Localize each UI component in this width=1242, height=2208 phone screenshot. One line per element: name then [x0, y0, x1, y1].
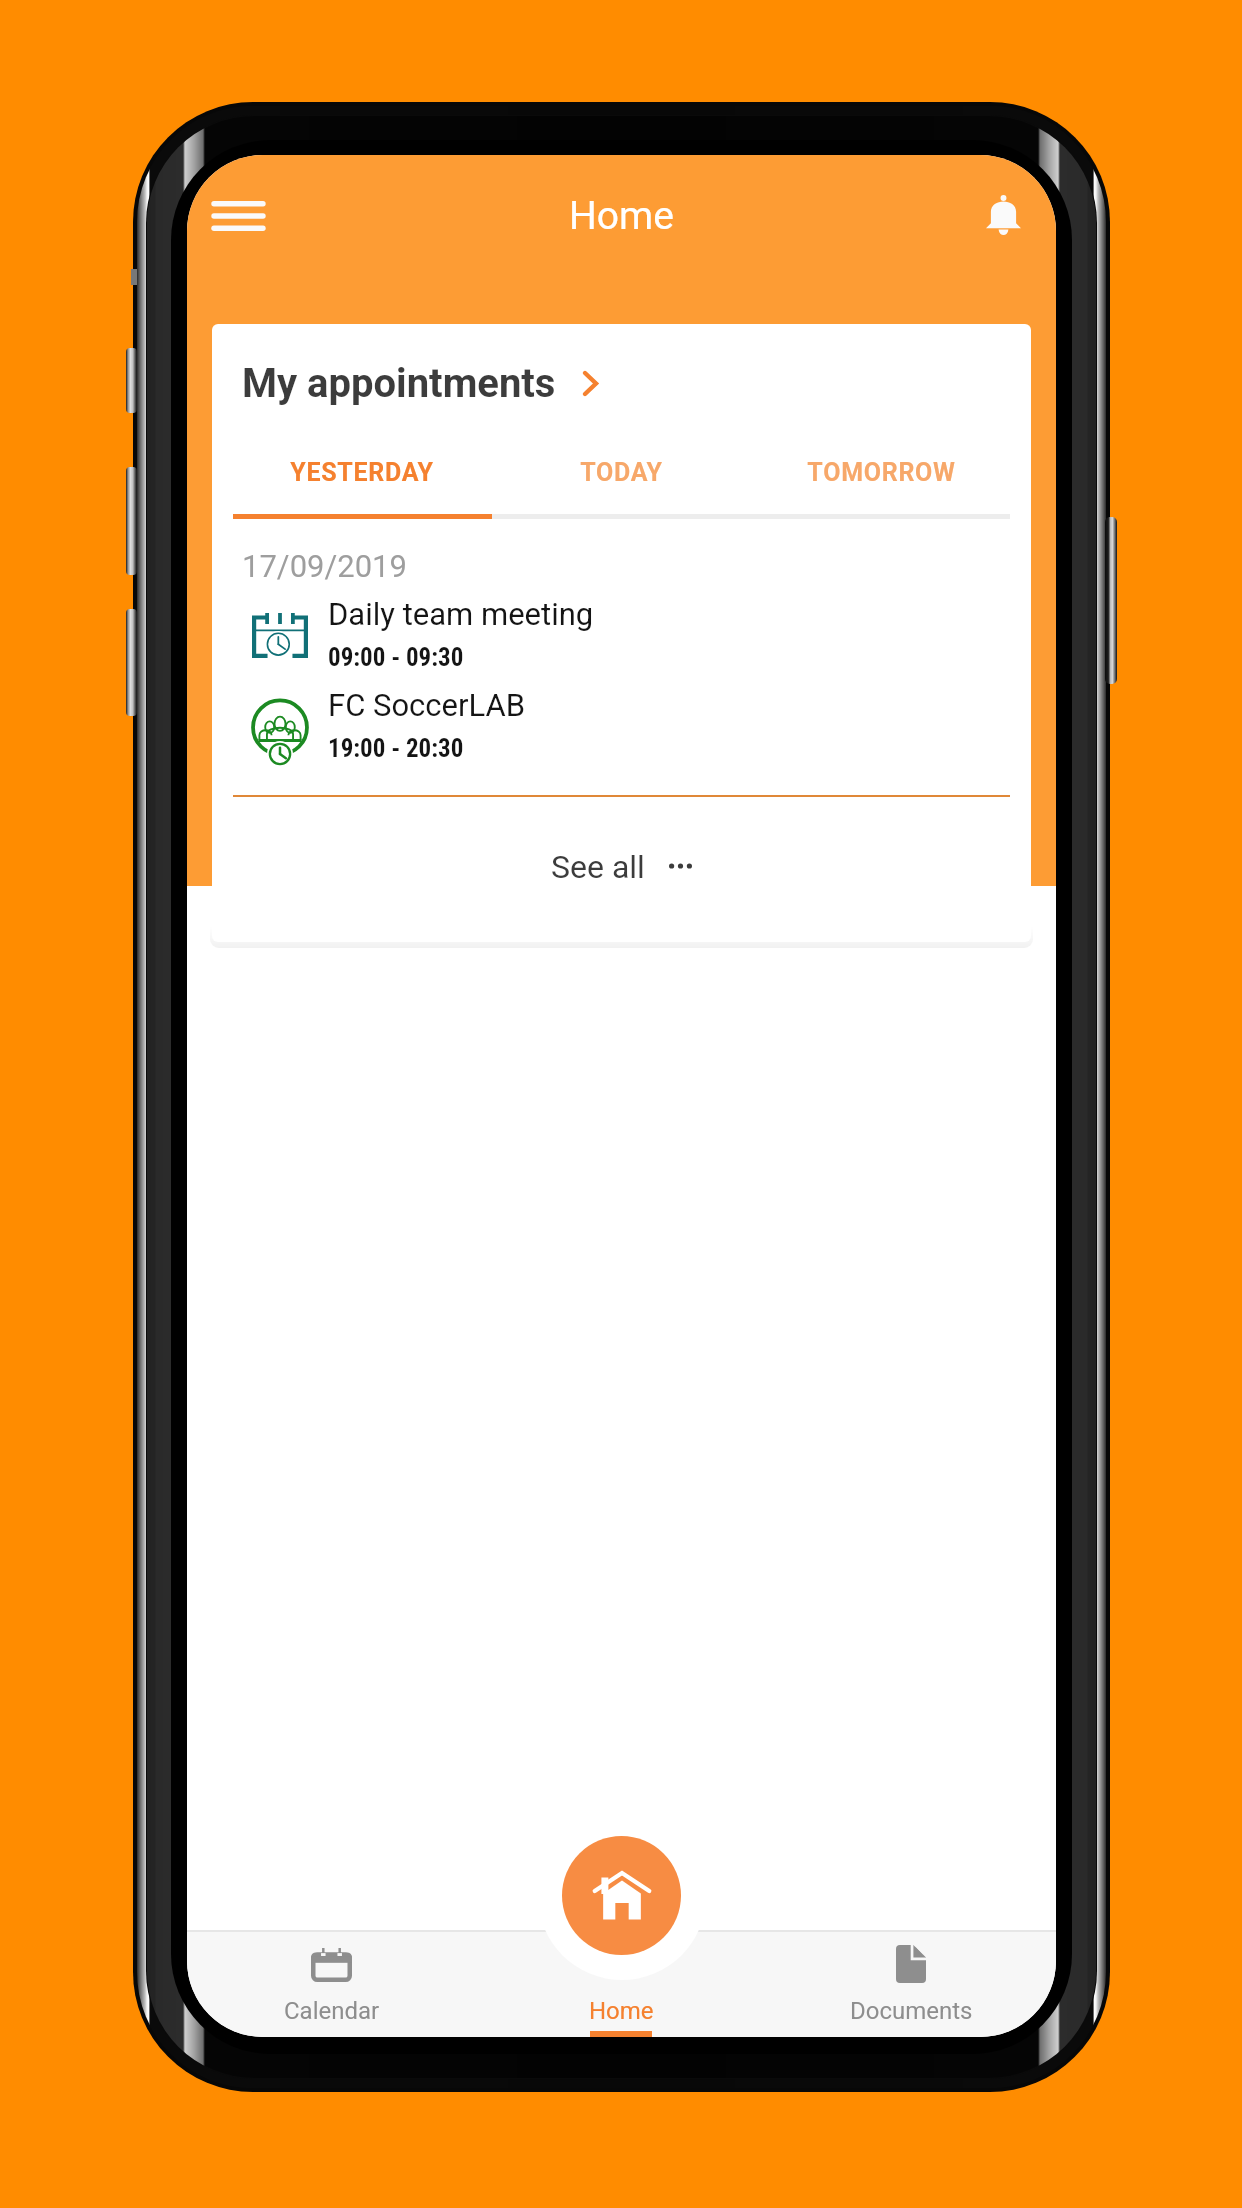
button[interactable]: Notifications — [963, 176, 1043, 256]
staticText: 19:00 - 20:30 — [328, 734, 464, 763]
staticText: See all — [551, 848, 645, 886]
button[interactable]: FC SoccerLAB — [212, 687, 1031, 778]
button[interactable]: Calendar — [187, 1930, 476, 2037]
staticText: TOMORROW — [807, 458, 956, 487]
staticText: YESTERDAY — [290, 458, 434, 487]
staticText: FC SoccerLAB — [328, 687, 526, 723]
staticText: Documents — [850, 1997, 973, 2025]
button[interactable]: Menu — [198, 176, 278, 256]
staticText: Daily team meeting — [328, 596, 594, 632]
staticText: Home — [569, 193, 674, 239]
button[interactable]: Home — [562, 1836, 681, 1955]
button[interactable]: See all — [212, 822, 1031, 912]
button[interactable]: Home — [476, 1930, 766, 2037]
staticText: 09:00 - 09:30 — [328, 643, 464, 672]
button[interactable]: YESTERDAY — [232, 451, 491, 493]
button[interactable]: TOMORROW — [751, 451, 1011, 493]
staticText: Calendar — [284, 1997, 380, 2025]
staticText: 17/09/2019 — [242, 548, 407, 584]
button[interactable]: Daily team meeting — [212, 596, 1031, 687]
staticText: TODAY — [580, 458, 663, 487]
button[interactable]: Documents — [766, 1930, 1056, 2037]
button[interactable]: TODAY — [491, 451, 751, 493]
staticText: My appointments — [242, 360, 556, 407]
button[interactable]: My appointments — [212, 352, 1031, 415]
staticText: Home — [589, 1997, 654, 2025]
